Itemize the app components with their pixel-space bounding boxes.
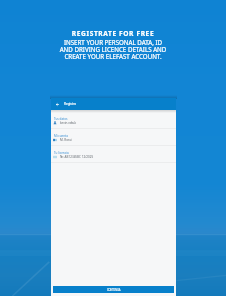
button[interactable]: M. Rossi	[53, 137, 176, 142]
staticText: CONTINUA	[107, 288, 121, 292]
staticText: M. Rossi	[60, 138, 72, 142]
staticText: Mi cuenta	[54, 134, 68, 138]
staticText: Tu licencia	[54, 151, 69, 155]
staticText: REGISTRATE FOR FREE	[0, 29, 226, 38]
staticText: Tus datos	[54, 117, 68, 121]
button[interactable]: CONTINUA	[53, 286, 174, 293]
button[interactable]: kevin.vdw.k	[53, 120, 176, 125]
staticText: Registro	[64, 102, 77, 106]
staticText: Nr. AB12345BC 12/2025	[60, 155, 94, 159]
staticText: kevin.vdw.k	[60, 121, 77, 125]
button[interactable]: Nr. AB12345BC 12/2025	[53, 154, 176, 159]
staticText: INSERT YOUR PERSONAL DATA, ID AND DRIVIN…	[0, 38, 226, 61]
button[interactable]: Back	[54, 101, 61, 108]
